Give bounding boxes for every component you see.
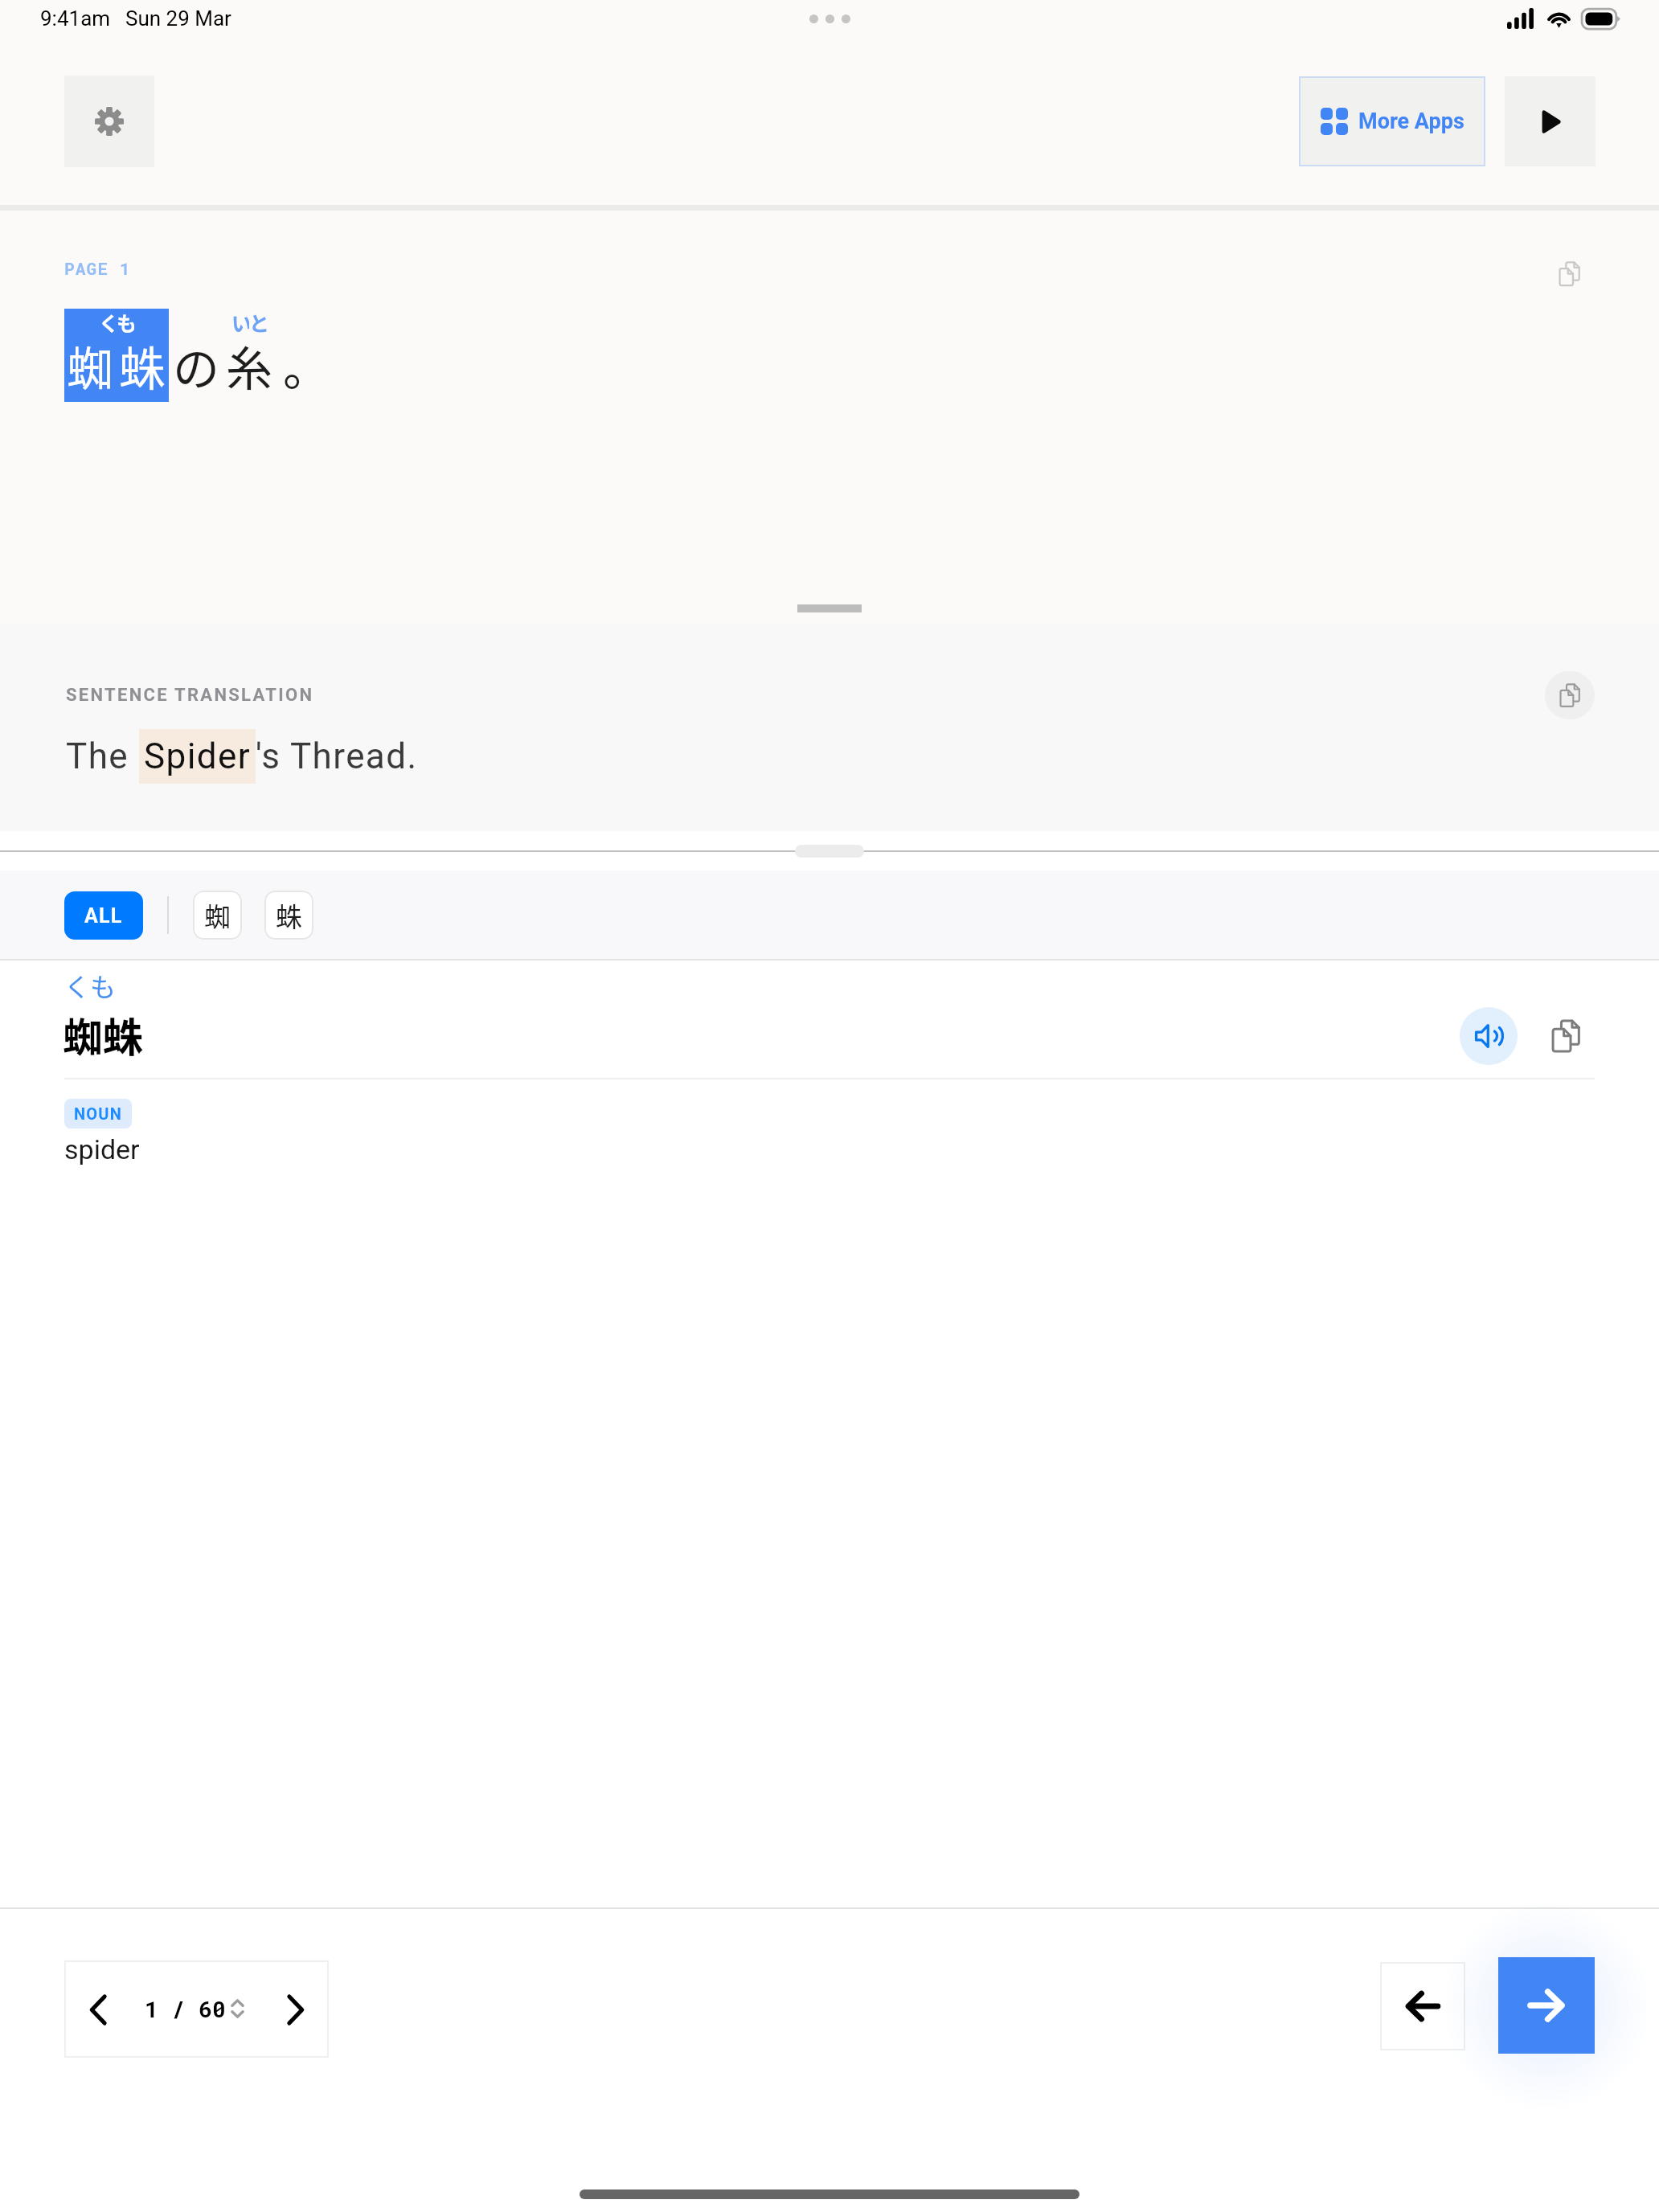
button[interactable]: Next xyxy=(1498,1957,1595,2054)
button[interactable]: Play word audio xyxy=(1460,1007,1518,1065)
button[interactable]: 蛛 xyxy=(264,891,313,940)
staticText: と xyxy=(249,308,267,335)
staticText: ALL xyxy=(84,904,123,928)
staticText: く xyxy=(99,308,117,335)
button[interactable]: Back xyxy=(1380,1962,1465,2050)
staticText: 9:41am xyxy=(40,6,111,31)
button[interactable]: Previous page xyxy=(72,1983,125,2036)
button[interactable]: ALL xyxy=(64,891,143,940)
staticText: 1 / 60 xyxy=(145,1994,226,2024)
button[interactable]: Choose page xyxy=(140,1989,252,2028)
staticText: NOUN xyxy=(74,1104,122,1123)
button[interactable]: Resize word list xyxy=(795,845,864,858)
button[interactable]: 蜘 xyxy=(193,891,242,940)
button[interactable]: Copy translation xyxy=(1545,671,1595,719)
staticText: も xyxy=(117,308,134,335)
button[interactable]: Play audio xyxy=(1505,76,1596,166)
staticText: 糸 xyxy=(226,332,273,399)
staticText: The xyxy=(66,735,139,777)
staticText: くも xyxy=(64,967,117,1004)
staticText: More Apps xyxy=(1358,109,1464,134)
staticText: spider xyxy=(64,1133,140,1165)
staticText: 蛛 xyxy=(119,332,166,399)
staticText: Sun 29 Mar xyxy=(125,6,231,31)
staticText: SENTENCE TRANSLATION xyxy=(66,685,314,706)
staticText: い xyxy=(231,308,249,335)
staticText: 。 xyxy=(283,332,330,399)
staticText: の xyxy=(173,332,220,399)
staticText: 's Thread. xyxy=(256,735,418,777)
button[interactable]: Settings xyxy=(64,76,154,167)
button[interactable]: Copy word xyxy=(1542,1012,1590,1060)
button[interactable]: Copy sentence xyxy=(1543,248,1595,300)
button[interactable]: Next page xyxy=(268,1983,321,2036)
staticText: 蜘 xyxy=(67,332,114,399)
staticText: 蜘蛛 xyxy=(63,1006,143,1063)
staticText: 蛛 xyxy=(276,896,302,935)
button[interactable]: Resize reading pane xyxy=(797,604,862,612)
button[interactable]: More Apps xyxy=(1299,76,1485,166)
staticText: PAGE 1 xyxy=(64,257,131,280)
staticText: 蜘 xyxy=(204,896,231,935)
staticText: Spider xyxy=(144,735,251,777)
